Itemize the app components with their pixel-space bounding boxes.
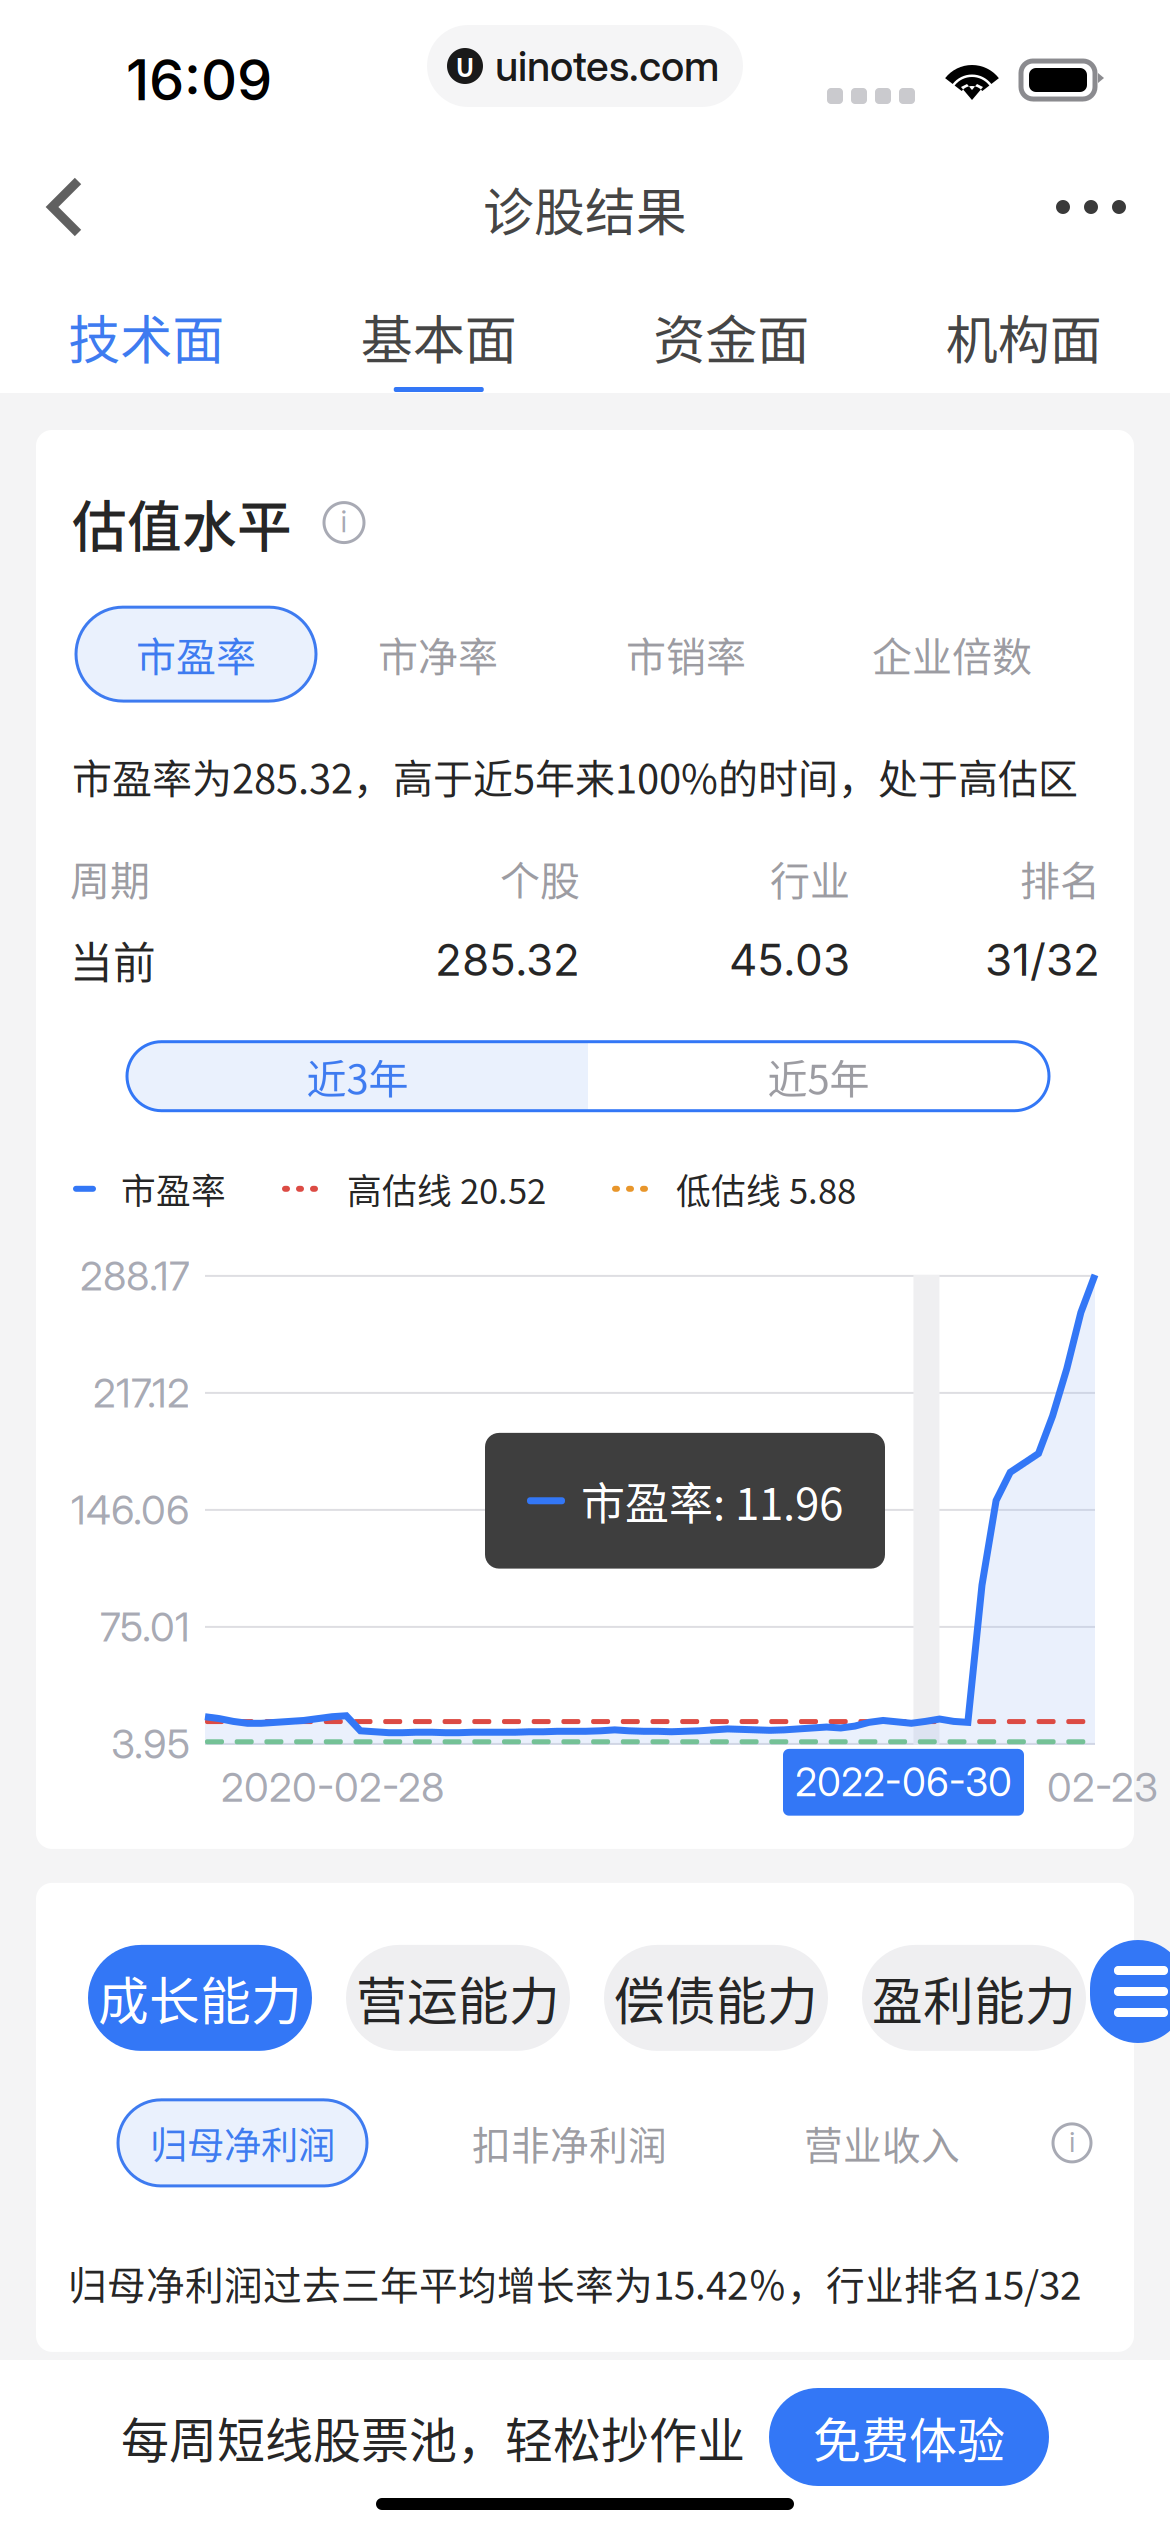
staticText: 288.17 [80,1252,190,1300]
staticText: 75.01 [100,1603,190,1651]
staticText: 217.12 [93,1369,190,1417]
button[interactable]: 归母净利润 [118,2100,367,2186]
staticText: 市盈率 [121,1164,226,1214]
staticText: 营业收入 [804,2115,960,2171]
staticText: 每周短线股票池，轻松抄作业 [121,2402,745,2472]
staticText: 偿债能力 [614,1961,818,2035]
staticText: 盈利能力 [872,1961,1076,2035]
button[interactable]: 偿债能力 [604,1945,828,2051]
staticText: 基本面 [361,299,517,374]
staticText: 营运能力 [356,1961,560,2035]
button[interactable]: 基本面 [292,282,585,393]
staticText: 归母净利润过去三年平均增长率为15.42％，行业排名15/32 [68,2255,1081,2311]
staticText: 16:09 [126,46,272,114]
staticText: 企业倍数 [872,625,1032,683]
button[interactable]: 近5年 [588,1042,1049,1110]
button[interactable]: 市销率 [626,601,746,707]
staticText: 2022-06-30 [795,1759,1012,1806]
staticText: 排名 [1020,849,1100,907]
staticText: uinotes.com [495,41,719,91]
button[interactable]: 营运能力 [346,1945,570,2051]
staticText: 诊股结果 [483,172,687,246]
staticText: 免费体验 [813,2402,1005,2472]
staticText: 周期 [70,849,150,907]
button[interactable]: 资金面 [585,282,877,393]
button[interactable]: 市净率 [378,601,498,707]
button[interactable]: 营业收入 [804,2093,960,2193]
staticText: 市盈率 [136,625,256,683]
staticText: 近5年 [767,1047,869,1105]
staticText: 45.03 [729,933,850,986]
button[interactable]: 企业倍数 [872,601,1032,707]
staticText: 资金面 [653,299,809,374]
staticText: 市销率 [626,625,746,683]
staticText: 低估线 5.88 [676,1164,856,1214]
button[interactable]: 市盈率 [76,607,316,701]
staticText: 02-23 [1047,1763,1158,1811]
button[interactable]: 机构面 [877,282,1170,393]
staticText: 31/32 [985,933,1100,986]
staticText: i [1069,2125,1075,2159]
staticText: 成长能力 [98,1961,302,2035]
staticText: 高估线 20.52 [347,1164,546,1214]
staticText: 估值水平 [72,483,292,562]
staticText: 当前 [70,929,156,991]
staticText: 285.32 [435,933,580,986]
button[interactable]: 成长能力 [88,1945,312,2051]
staticText: 2020-02-28 [221,1763,444,1811]
staticText: 个股 [500,849,580,907]
button[interactable]: 近3年 [127,1042,588,1110]
staticText: U [455,48,474,84]
button[interactable]: 技术面 [0,282,292,393]
staticText: 市盈率: 11.96 [581,1469,843,1533]
staticText: 技术面 [68,299,224,374]
staticText: 行业 [770,849,850,907]
button[interactable]: 返回 [0,156,122,262]
staticText: 市盈率为285.32，高于近5年来100%的时间，处于高估区 [72,747,1078,805]
button[interactable]: 免费体验 [769,2388,1049,2486]
staticText: 扣非净利润 [472,2115,667,2171]
staticText: 市净率 [378,625,498,683]
staticText: 近3年 [306,1047,408,1105]
staticText: i [340,504,347,539]
staticText: 归母净利润 [150,2116,335,2170]
button[interactable]: 更多指标 [1090,1940,1170,2043]
button[interactable]: 扣非净利润 [472,2093,667,2193]
button[interactable]: 盈利能力 [862,1945,1086,2051]
staticText: 机构面 [946,299,1102,374]
staticText: 146.06 [71,1486,190,1534]
staticText: 3.95 [111,1720,190,1768]
button[interactable]: 更多 [1022,174,1170,244]
